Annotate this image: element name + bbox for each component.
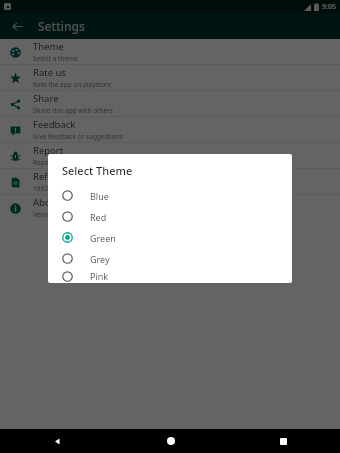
staticText: Grey <box>90 253 110 265</box>
button[interactable]: Blue <box>48 185 292 206</box>
staticText: Blue <box>90 190 109 202</box>
button[interactable]: Recent apps <box>227 429 340 453</box>
button[interactable]: Grey <box>48 248 292 269</box>
button[interactable]: Green <box>48 227 292 248</box>
staticText: About <box>33 196 60 209</box>
staticText: Report a bug or mistake <box>33 158 107 167</box>
staticText: Select Theme <box>62 163 133 178</box>
button[interactable]: Back <box>0 429 114 453</box>
staticText: Report <box>33 144 64 157</box>
button[interactable]: Share <box>0 91 340 116</box>
staticText: Select a theme <box>33 54 78 63</box>
staticText: Green <box>90 232 116 244</box>
button[interactable]: Home <box>114 429 227 453</box>
staticText: Share <box>33 92 59 105</box>
staticText: Reference <box>33 170 78 183</box>
button[interactable]: Pink <box>48 269 292 283</box>
staticText: Theme <box>33 40 64 53</box>
button[interactable]: About <box>0 195 340 220</box>
button[interactable]: Theme <box>0 39 340 64</box>
staticText: Version 5.0.1 <box>33 210 73 219</box>
button[interactable]: Red <box>48 206 292 227</box>
button[interactable]: Feedback <box>0 117 340 142</box>
staticText: Pink <box>90 270 109 282</box>
staticText: Settings <box>38 18 85 34</box>
staticText: Rate us <box>33 66 66 79</box>
staticText: Rate the app on playstore <box>33 80 112 89</box>
button[interactable]: Reference <box>0 169 340 194</box>
staticText: 1992 Original reference <box>33 184 105 193</box>
button[interactable]: Report <box>0 143 340 168</box>
staticText: 9:05 <box>322 2 336 12</box>
staticText: Red <box>90 211 107 223</box>
staticText: Share this app with others <box>33 106 113 115</box>
staticText: Feedback <box>33 118 76 131</box>
staticText: Give feedback or suggestions <box>33 132 123 141</box>
button[interactable]: Rate us <box>0 65 340 90</box>
button[interactable]: Back <box>7 16 27 36</box>
